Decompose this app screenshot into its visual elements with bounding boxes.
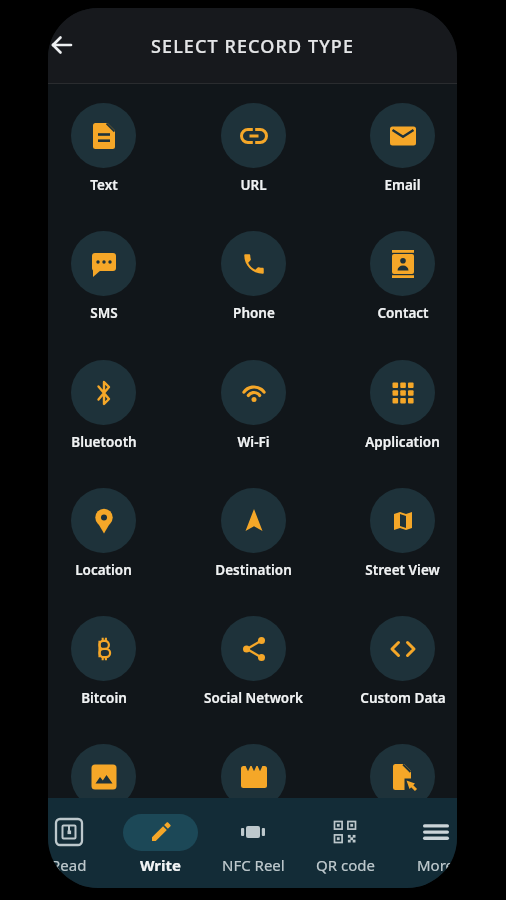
button[interactable] xyxy=(370,744,435,809)
staticText: Bitcoin xyxy=(81,689,127,707)
staticText: SMS xyxy=(90,304,118,322)
button[interactable] xyxy=(71,103,136,168)
staticText: Email xyxy=(384,176,421,194)
button[interactable]: More xyxy=(391,798,457,888)
staticText: Custom Data xyxy=(360,689,446,707)
button[interactable] xyxy=(221,103,286,168)
button[interactable] xyxy=(71,231,136,296)
button[interactable] xyxy=(370,103,435,168)
staticText: QR code xyxy=(316,855,375,875)
staticText: Social Network xyxy=(204,689,303,707)
staticText: Destination xyxy=(215,561,292,579)
button[interactable] xyxy=(370,231,435,296)
staticText: More xyxy=(417,855,455,875)
staticText: Write xyxy=(140,855,182,875)
button[interactable] xyxy=(71,616,136,681)
staticText: Read xyxy=(51,855,87,875)
staticText: NFC Reel xyxy=(222,855,285,875)
button[interactable] xyxy=(221,616,286,681)
button[interactable] xyxy=(221,744,286,809)
button[interactable]: NFC Reel xyxy=(208,798,298,888)
staticText: URL xyxy=(240,176,267,194)
staticText: Wi-Fi xyxy=(237,433,270,451)
button[interactable] xyxy=(221,488,286,553)
button[interactable] xyxy=(71,488,136,553)
button[interactable]: QR code xyxy=(300,798,390,888)
button[interactable]: Read xyxy=(48,798,114,888)
button[interactable] xyxy=(370,488,435,553)
staticText: SELECT RECORD TYPE xyxy=(151,34,355,59)
button[interactable] xyxy=(370,616,435,681)
button[interactable] xyxy=(48,21,86,69)
staticText: Contact xyxy=(377,304,429,322)
staticText: Text xyxy=(90,176,118,194)
button[interactable]: Write xyxy=(116,798,206,888)
staticText: Location xyxy=(75,561,132,579)
button[interactable] xyxy=(221,360,286,425)
staticText: Street View xyxy=(365,561,440,579)
button[interactable] xyxy=(221,231,286,296)
button[interactable] xyxy=(71,360,136,425)
button[interactable] xyxy=(71,744,136,809)
staticText: Phone xyxy=(233,304,275,322)
staticText: Application xyxy=(365,433,440,451)
staticText: Bluetooth xyxy=(71,433,137,451)
button[interactable] xyxy=(370,360,435,425)
